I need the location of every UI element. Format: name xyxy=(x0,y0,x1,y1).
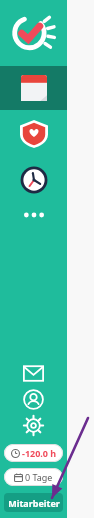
button[interactable]: Calendar, March 24 xyxy=(0,66,67,110)
button[interactable]: Mitarbeiter xyxy=(4,493,63,512)
button[interactable]: 0 Tage xyxy=(4,468,63,486)
button[interactable]: Messages xyxy=(0,360,67,386)
staticText: 0 Tage xyxy=(25,471,53,483)
button[interactable]: Profile xyxy=(0,386,67,412)
button[interactable]: Settings xyxy=(0,412,67,438)
button[interactable]: App logo xyxy=(0,0,67,66)
staticText: -120.0 h xyxy=(22,447,57,459)
button[interactable]: More xyxy=(0,202,67,228)
button[interactable]: -120.0 h xyxy=(4,444,63,462)
button[interactable]: Time tracking xyxy=(0,158,67,202)
button[interactable]: Health and safety xyxy=(0,110,67,158)
staticText: Mitarbeiter xyxy=(8,497,60,509)
